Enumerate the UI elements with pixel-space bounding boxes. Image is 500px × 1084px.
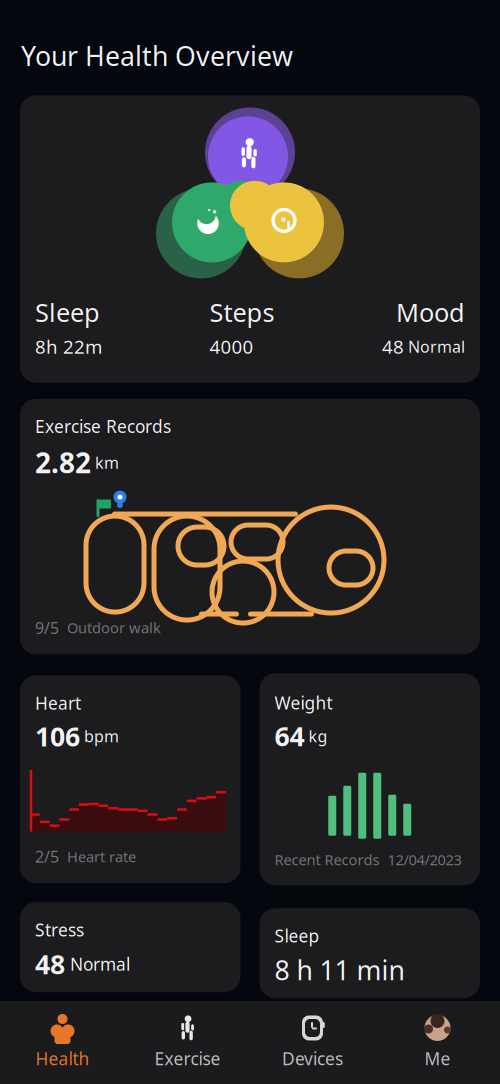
staticText: bpm: [84, 725, 119, 747]
staticText: kg: [308, 725, 327, 747]
staticText: 8h 22m: [35, 334, 102, 359]
staticText: Steps: [209, 295, 274, 329]
staticText: 4000: [209, 334, 253, 359]
staticText: Stress: [35, 918, 84, 941]
staticText: 8 h 11 min: [274, 952, 404, 988]
button[interactable]: Me: [375, 1007, 500, 1076]
staticText: km: [95, 452, 119, 473]
staticText: Heart: [35, 691, 81, 714]
staticText: Me: [424, 1047, 450, 1070]
staticText: Sleep: [35, 295, 100, 329]
button[interactable]: Heart: [20, 675, 240, 883]
staticText: 2/5: [35, 846, 59, 867]
staticText: 64: [274, 718, 304, 754]
staticText: Outdoor walk: [67, 618, 161, 637]
staticText: Devices: [282, 1047, 343, 1070]
staticText: 9/5: [35, 617, 59, 638]
button[interactable]: Exercise: [125, 1007, 250, 1076]
button[interactable]: Stress: [20, 902, 240, 992]
staticText: 48: [35, 946, 65, 982]
staticText: Weight: [274, 691, 332, 714]
staticText: 106: [35, 718, 80, 754]
button[interactable]: Sleep: [259, 902, 480, 992]
staticText: Sleep: [274, 924, 319, 947]
staticText: Recent Records: [274, 850, 379, 869]
staticText: Your Health Overview: [21, 38, 293, 73]
staticText: 2.82: [35, 444, 91, 481]
staticText: Exercise: [154, 1047, 220, 1070]
staticText: 48: [382, 334, 404, 359]
button[interactable]: Health: [0, 1007, 125, 1076]
button[interactable]: Devices: [250, 1007, 375, 1076]
staticText: Health: [35, 1047, 89, 1070]
staticText: Heart rate: [67, 847, 136, 866]
staticText: Exercise Records: [35, 415, 171, 438]
button[interactable]: Sleep: [20, 95, 480, 383]
staticText: Normal: [70, 952, 130, 975]
staticText: 12/04/2023: [387, 850, 461, 869]
button[interactable]: Weight: [259, 673, 480, 885]
button[interactable]: Exercise Records: [20, 399, 480, 654]
staticText: Mood: [396, 295, 465, 329]
staticText: Normal: [408, 336, 465, 357]
